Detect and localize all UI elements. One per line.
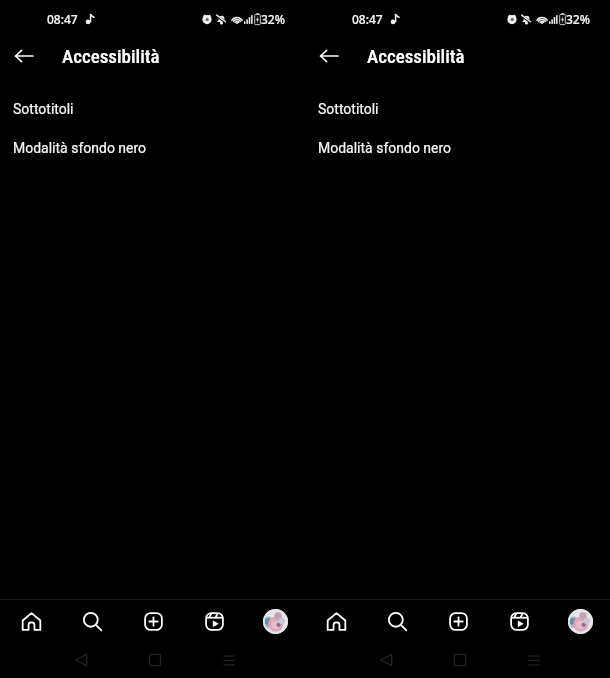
button[interactable]: Reels (198, 605, 230, 637)
button[interactable]: Search (76, 605, 108, 637)
button[interactable]: Modalità sfondo nero (305, 137, 610, 159)
staticText: Accessibilità (367, 45, 465, 67)
button[interactable]: Profile (564, 605, 596, 637)
staticText: Sottotitoli (13, 101, 74, 117)
staticText: 32% (566, 11, 590, 27)
staticText: Modalità sfondo nero (13, 140, 147, 156)
button[interactable]: Search (381, 605, 413, 637)
button[interactable]: Home (447, 647, 473, 673)
button[interactable]: Sottotitoli (305, 98, 610, 120)
staticText: Accessibilità (62, 45, 160, 67)
button[interactable]: Sottotitoli (0, 98, 305, 120)
button[interactable]: Back (8, 40, 40, 72)
staticText: Modalità sfondo nero (318, 140, 452, 156)
staticText: Sottotitoli (318, 101, 379, 117)
button[interactable]: Back (373, 647, 399, 673)
button[interactable]: Home (142, 647, 168, 673)
button[interactable]: Home (15, 605, 47, 637)
button[interactable]: Recents (521, 647, 547, 673)
button[interactable]: Home (320, 605, 352, 637)
button[interactable]: Modalità sfondo nero (0, 137, 305, 159)
button[interactable]: Create (137, 605, 169, 637)
staticText: 08:47 (47, 11, 78, 27)
button[interactable]: Create (442, 605, 474, 637)
staticText: 08:47 (352, 11, 383, 27)
button[interactable]: Back (68, 647, 94, 673)
button[interactable]: Recents (216, 647, 242, 673)
staticText: 32% (261, 11, 285, 27)
button[interactable]: Reels (503, 605, 535, 637)
button[interactable]: Back (313, 40, 345, 72)
button[interactable]: Profile (259, 605, 291, 637)
